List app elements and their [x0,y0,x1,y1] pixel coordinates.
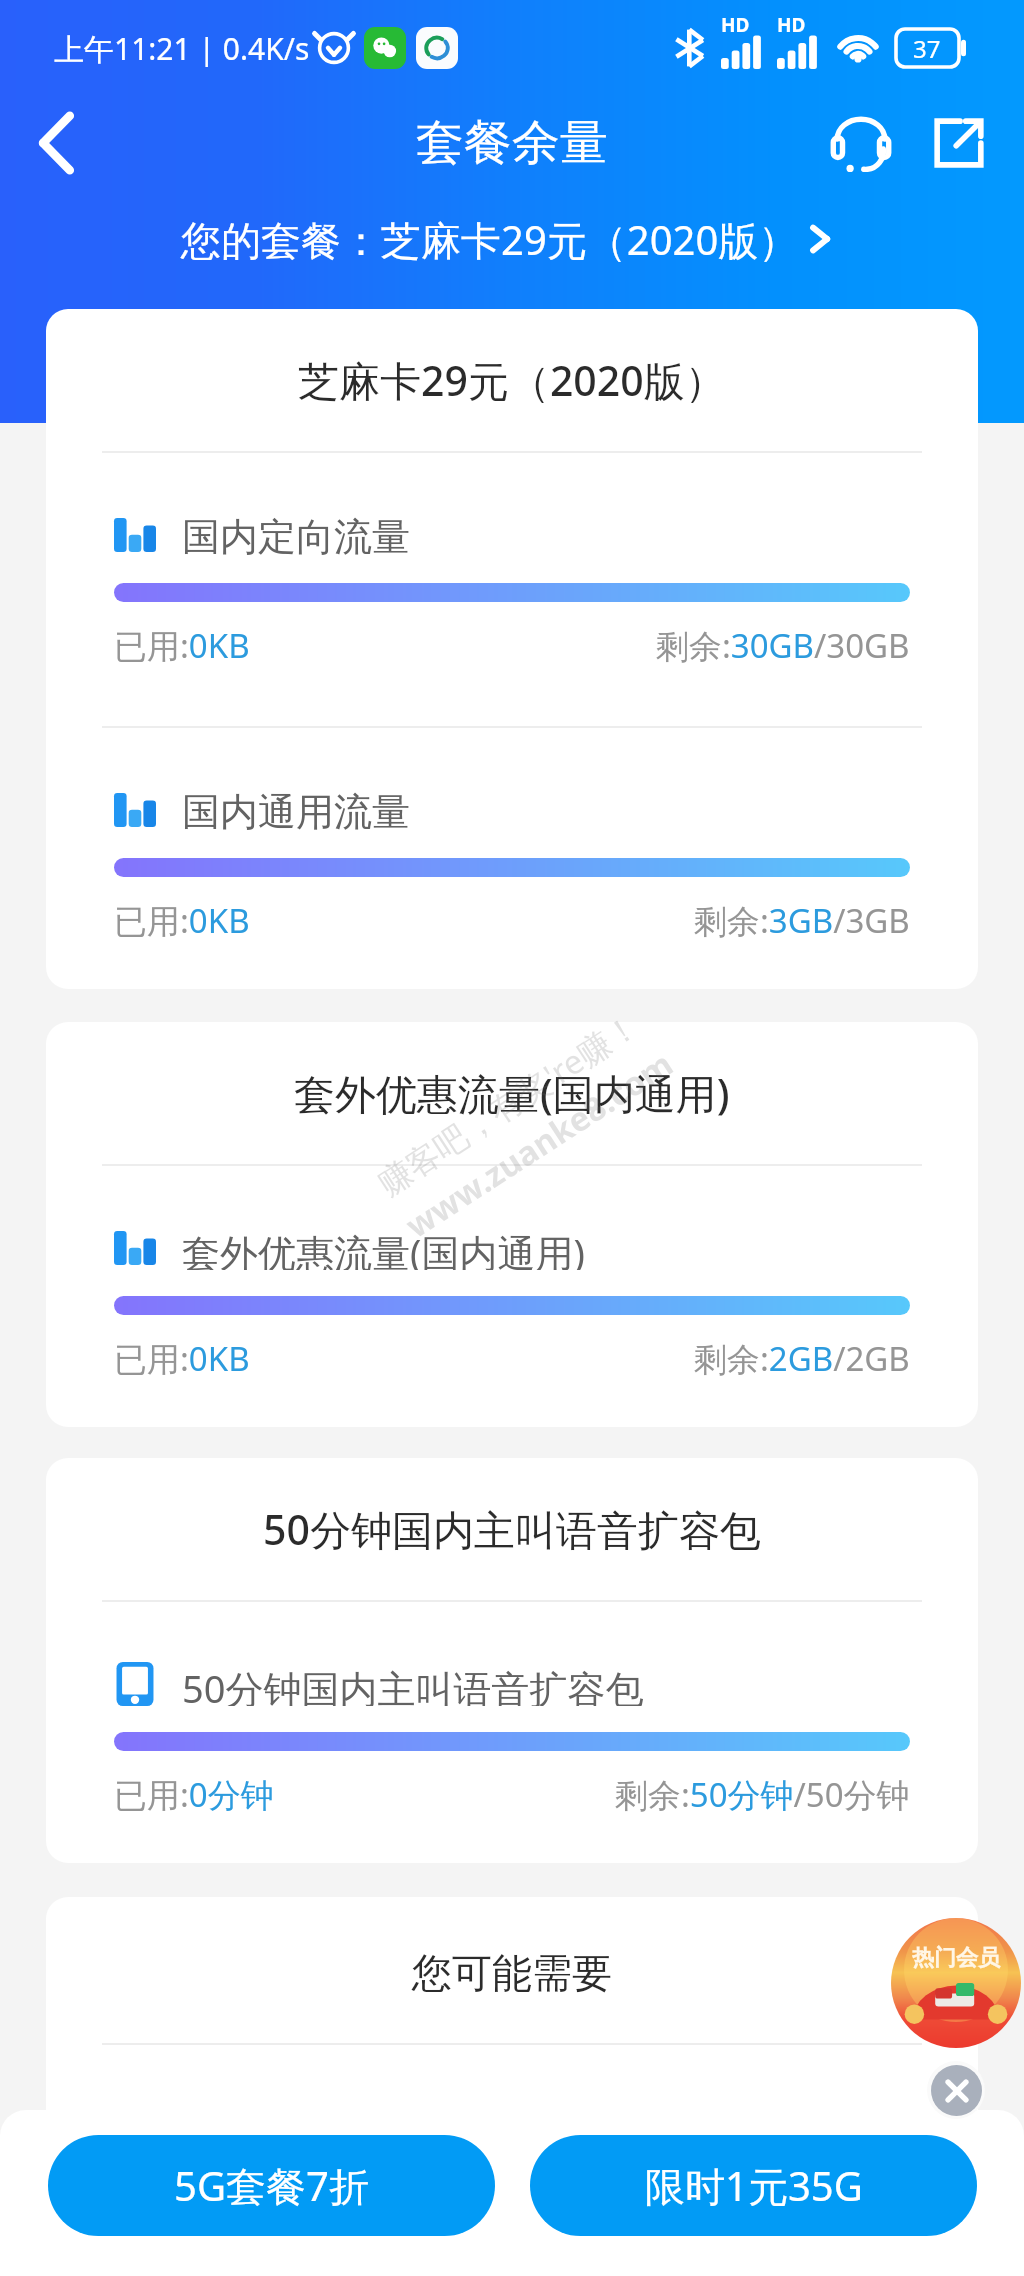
staticText: 上午11:21 | 0.4K/s [54,28,310,69]
staticText: 剩余:3GB/3GB [694,898,910,943]
button[interactable]: 您的套餐：芝麻卡29元（2020版） [0,196,1024,282]
button[interactable]: Share [912,95,1006,191]
staticText: 已用:0KB [114,898,250,943]
staticText: 您可能需要 [412,1948,612,1998]
staticText: 剩余:30GB/30GB [656,623,910,668]
staticText: 套餐余量 [416,113,608,173]
button[interactable]: 热门会员 promotion [891,1918,1021,2048]
staticText: 已用:0KB [114,1336,250,1381]
staticText: 芝麻卡29元（2020版） [298,352,726,408]
staticText: 国内定向流量 [182,513,410,557]
staticText: 赚客吧，有奖're赚！ [369,1002,648,1205]
button[interactable]: 5G套餐7折 [48,2135,495,2236]
staticText: 50分钟国内主叫语音扩容包 [182,1662,644,1706]
staticText: 37 [913,32,941,65]
staticText: 已用:0KB [114,623,250,668]
staticText: 剩余:2GB/2GB [694,1336,910,1381]
staticText: HD [777,12,806,38]
staticText: 国内通用流量 [182,788,410,832]
button[interactable]: Close [931,2065,982,2116]
staticText: 限时1元35G [645,2158,863,2213]
staticText: 已用:0分钟 [114,1772,274,1817]
staticText: 50分钟国内主叫语音扩容包 [263,1501,761,1557]
staticText: 您的套餐：芝麻卡29元（2020版） [181,212,799,267]
button[interactable]: Customer service [810,95,912,191]
button[interactable]: 限时1元35G [530,2135,977,2236]
staticText: 剩余:50分钟/50分钟 [615,1772,910,1817]
button[interactable]: Back [0,95,112,191]
staticText: 热门会员 [912,1944,1000,1972]
staticText: 套外优惠流量(国内通用) [294,1065,730,1121]
staticText: www.zuanke8.com [397,1041,681,1248]
staticText: 5G套餐7折 [174,2158,369,2213]
staticText: HD [721,12,750,38]
staticText: 套外优惠流量(国内通用) [182,1226,585,1270]
